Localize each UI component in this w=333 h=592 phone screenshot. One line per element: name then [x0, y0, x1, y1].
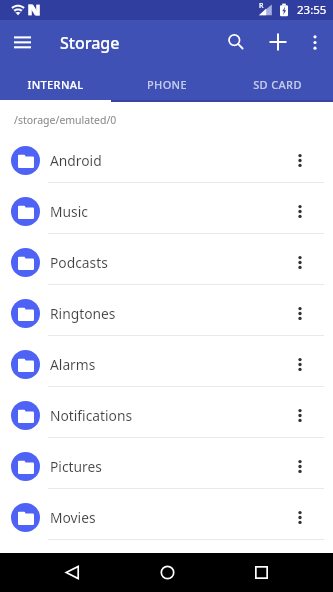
- button[interactable]: Pictures: [0, 440, 333, 491]
- staticText: Android: [50, 151, 102, 170]
- staticText: PHONE: [147, 77, 187, 92]
- staticText: 23:55: [297, 2, 327, 18]
- staticText: SD CARD: [253, 77, 302, 92]
- staticText: Storage: [60, 32, 120, 54]
- staticText: Podcasts: [50, 253, 108, 272]
- button[interactable]: PHONE: [111, 64, 222, 100]
- staticText: Ringtones: [50, 304, 116, 323]
- button[interactable]: Item options: [279, 139, 321, 181]
- button[interactable]: Alarms: [0, 338, 333, 389]
- button[interactable]: Item options: [279, 445, 321, 487]
- button[interactable]: Item options: [279, 190, 321, 232]
- button[interactable]: Item options: [279, 241, 321, 283]
- button[interactable]: INTERNAL: [0, 64, 111, 100]
- button[interactable]: Android: [0, 134, 333, 185]
- staticText: Alarms: [50, 355, 96, 374]
- button[interactable]: Item options: [279, 343, 321, 385]
- button[interactable]: Item options: [279, 292, 321, 334]
- button[interactable]: Item options: [279, 394, 321, 436]
- button[interactable]: SD CARD: [222, 64, 333, 100]
- button[interactable]: Recent apps: [238, 553, 284, 592]
- button[interactable]: More options: [297, 24, 333, 60]
- staticText: Pictures: [50, 457, 102, 476]
- staticText: Notifications: [50, 406, 133, 425]
- button[interactable]: Podcasts: [0, 236, 333, 287]
- staticText: INTERNAL: [27, 77, 84, 92]
- button[interactable]: Navigation menu: [0, 20, 44, 64]
- button[interactable]: Back: [49, 553, 95, 592]
- staticText: Movies: [50, 508, 96, 527]
- button[interactable]: Ringtones: [0, 287, 333, 338]
- button[interactable]: Movies: [0, 491, 333, 542]
- button[interactable]: Search: [212, 20, 259, 64]
- staticText: R: [259, 1, 264, 11]
- staticText: Music: [50, 202, 88, 221]
- staticText: /storage/emulated/0: [14, 113, 117, 127]
- button[interactable]: Item options: [279, 496, 321, 538]
- button[interactable]: Add: [259, 20, 297, 64]
- button[interactable]: Music: [0, 185, 333, 236]
- button[interactable]: Notifications: [0, 389, 333, 440]
- button[interactable]: Home: [144, 553, 190, 592]
